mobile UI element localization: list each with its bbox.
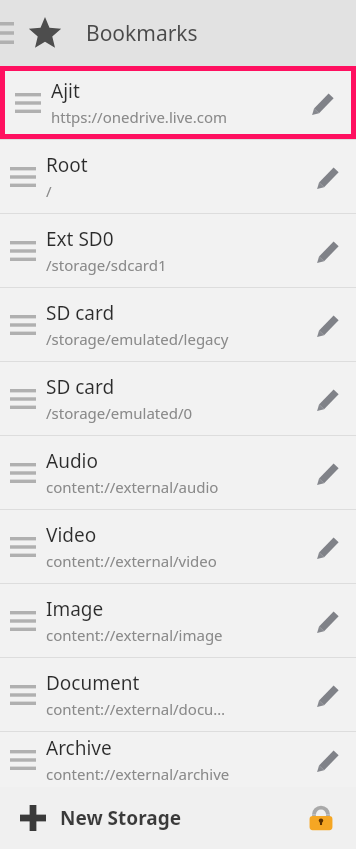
button[interactable]: Edit Document	[300, 658, 356, 731]
button[interactable]: Reorder	[0, 140, 46, 213]
button[interactable]: Reorder	[0, 510, 356, 583]
button[interactable]: Bookmarks	[22, 10, 68, 56]
staticText: Archive	[46, 735, 112, 761]
button[interactable]: New Storage	[0, 787, 292, 849]
staticText: SD card	[46, 300, 115, 326]
button[interactable]: Edit Ext SD0	[300, 214, 356, 287]
button[interactable]: Reorder	[0, 584, 356, 657]
staticText: /	[46, 181, 52, 201]
button[interactable]: Reorder	[0, 362, 356, 435]
button[interactable]: Reorder	[0, 288, 356, 361]
button[interactable]: Open navigation drawer	[0, 0, 14, 66]
staticText: New Storage	[60, 805, 182, 831]
button[interactable]: Reorder	[5, 71, 51, 134]
button[interactable]: Reorder	[0, 658, 356, 731]
staticText: /storage/sdcard1	[46, 255, 167, 275]
staticText: Root	[46, 152, 88, 178]
button[interactable]: Reorder	[0, 66, 356, 139]
staticText: content://external/video	[46, 551, 217, 571]
button[interactable]: Edit Image	[300, 584, 356, 657]
staticText: Image	[46, 596, 104, 622]
staticText: Video	[46, 522, 97, 548]
button[interactable]: Reorder	[0, 288, 46, 361]
staticText: Ajit	[51, 78, 80, 104]
staticText: Bookmarks	[86, 19, 198, 48]
staticText: Audio	[46, 448, 98, 474]
staticText: Ext SD0	[46, 226, 114, 252]
staticText: content://external/audio	[46, 477, 219, 497]
button[interactable]: Edit Archive	[300, 732, 356, 787]
staticText: https://onedrive.live.com	[51, 107, 228, 127]
button[interactable]: Reorder	[0, 214, 356, 287]
button[interactable]: Reorder	[0, 584, 46, 657]
button[interactable]: Edit SD card	[300, 288, 356, 361]
button[interactable]: Lock bookmarks	[292, 789, 350, 847]
button[interactable]: Reorder	[0, 732, 46, 787]
staticText: content://external/image	[46, 625, 223, 645]
staticText: /storage/emulated/0	[46, 403, 193, 423]
button[interactable]: Reorder	[0, 436, 356, 509]
button[interactable]: Edit Root	[300, 140, 356, 213]
button[interactable]: Reorder	[0, 214, 46, 287]
button[interactable]: Reorder	[0, 732, 356, 787]
button[interactable]: Reorder	[0, 140, 356, 213]
staticText: content://external/docu…	[46, 699, 226, 719]
button[interactable]: Reorder	[0, 510, 46, 583]
button[interactable]: Reorder	[0, 658, 46, 731]
button[interactable]: Edit SD card	[300, 362, 356, 435]
staticText: Document	[46, 670, 140, 696]
button[interactable]: Reorder	[0, 362, 46, 435]
button[interactable]: Edit Audio	[300, 436, 356, 509]
staticText: SD card	[46, 374, 115, 400]
staticText: /storage/emulated/legacy	[46, 329, 229, 349]
staticText: content://external/archive	[46, 764, 230, 784]
button[interactable]: Reorder	[0, 436, 46, 509]
button[interactable]: Edit Ajit	[295, 71, 351, 134]
button[interactable]: Edit Video	[300, 510, 356, 583]
